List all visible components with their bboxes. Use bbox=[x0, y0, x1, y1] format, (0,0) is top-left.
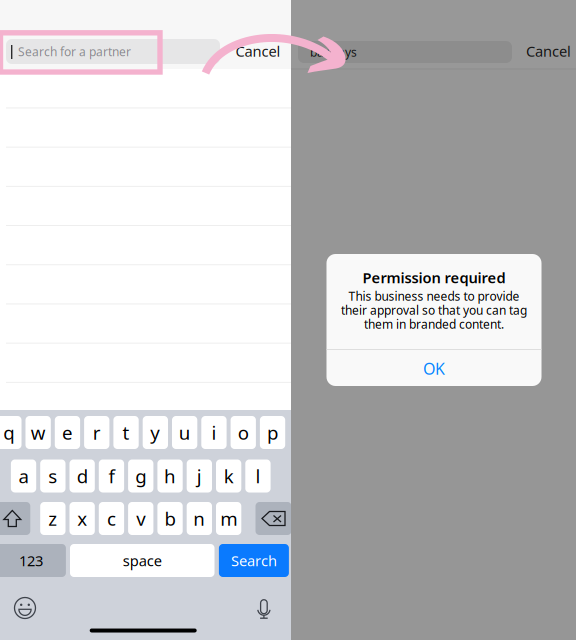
staticText: OK bbox=[423, 358, 445, 379]
staticText: y bbox=[150, 420, 160, 445]
staticText: i bbox=[211, 420, 216, 445]
button[interactable]: l bbox=[245, 459, 271, 492]
button[interactable]: b bbox=[157, 502, 183, 535]
staticText: Search for a partner bbox=[18, 43, 131, 59]
staticText: k bbox=[224, 464, 234, 488]
staticText: f bbox=[108, 464, 114, 488]
button[interactable]: g bbox=[128, 459, 153, 492]
staticText: 123 bbox=[19, 551, 43, 570]
staticText: a bbox=[19, 464, 29, 488]
staticText: u bbox=[179, 420, 191, 445]
staticText: h bbox=[164, 464, 176, 488]
button[interactable]: z bbox=[40, 502, 65, 535]
button[interactable]: c bbox=[99, 502, 124, 535]
button[interactable]: Cancel bbox=[518, 38, 576, 64]
button[interactable]: p bbox=[260, 416, 285, 449]
button[interactable]: barclays bbox=[298, 41, 512, 63]
staticText: them in branded content. bbox=[364, 316, 504, 332]
staticText: w bbox=[31, 420, 46, 445]
staticText: d bbox=[77, 464, 88, 488]
staticText: s bbox=[48, 464, 57, 488]
button[interactable]: o bbox=[231, 416, 256, 449]
staticText: c bbox=[107, 506, 116, 531]
button[interactable]: Search for a partner bbox=[6, 39, 220, 64]
button[interactable]: e bbox=[55, 416, 80, 449]
button[interactable]: Shift bbox=[0, 502, 30, 535]
button[interactable]: n bbox=[187, 502, 212, 535]
button[interactable]: a bbox=[11, 459, 36, 492]
staticText: m bbox=[220, 506, 237, 531]
button[interactable]: x bbox=[69, 502, 95, 535]
button[interactable]: q bbox=[0, 416, 21, 449]
button[interactable]: h bbox=[157, 459, 183, 492]
button[interactable]: m bbox=[216, 502, 241, 535]
staticText: x bbox=[77, 506, 87, 531]
staticText: g bbox=[135, 464, 146, 488]
staticText: p bbox=[267, 420, 278, 445]
staticText: e bbox=[62, 420, 73, 445]
staticText: r bbox=[93, 420, 101, 445]
button[interactable]: j bbox=[187, 459, 212, 492]
staticText: z bbox=[48, 506, 57, 531]
staticText: t bbox=[123, 420, 130, 445]
button[interactable]: f bbox=[99, 459, 124, 492]
button[interactable]: u bbox=[172, 416, 197, 449]
staticText: o bbox=[238, 420, 249, 445]
staticText: b bbox=[165, 506, 176, 531]
button[interactable]: 123 bbox=[0, 544, 66, 577]
staticText: v bbox=[136, 506, 145, 531]
staticText: q bbox=[3, 420, 14, 445]
button[interactable]: Emoji keyboard bbox=[14, 597, 35, 618]
button[interactable]: Dictate bbox=[257, 600, 271, 622]
staticText: Cancel bbox=[235, 41, 280, 61]
staticText: space bbox=[123, 551, 162, 570]
button[interactable]: t bbox=[113, 416, 139, 449]
button[interactable]: d bbox=[69, 459, 95, 492]
button[interactable]: OK bbox=[326, 350, 541, 386]
staticText: their approval so that you can tag bbox=[341, 302, 527, 318]
staticText: This business needs to provide bbox=[348, 288, 519, 304]
staticText: l bbox=[255, 464, 260, 488]
button[interactable]: i bbox=[201, 416, 227, 449]
button[interactable]: s bbox=[40, 459, 65, 492]
staticText: Search bbox=[231, 551, 277, 570]
button[interactable]: space bbox=[70, 544, 214, 577]
button[interactable]: v bbox=[128, 502, 153, 535]
button[interactable]: r bbox=[84, 416, 109, 449]
staticText: j bbox=[197, 464, 202, 488]
staticText: n bbox=[193, 506, 205, 531]
staticText: Permission required bbox=[362, 268, 505, 287]
button[interactable]: k bbox=[216, 459, 241, 492]
button[interactable]: w bbox=[25, 416, 51, 449]
button[interactable]: Delete bbox=[255, 502, 291, 535]
button[interactable]: Search bbox=[219, 544, 289, 577]
button[interactable]: Cancel bbox=[228, 38, 288, 64]
button[interactable]: y bbox=[143, 416, 168, 449]
staticText: Cancel bbox=[526, 41, 571, 61]
staticText: barclays bbox=[310, 44, 357, 60]
